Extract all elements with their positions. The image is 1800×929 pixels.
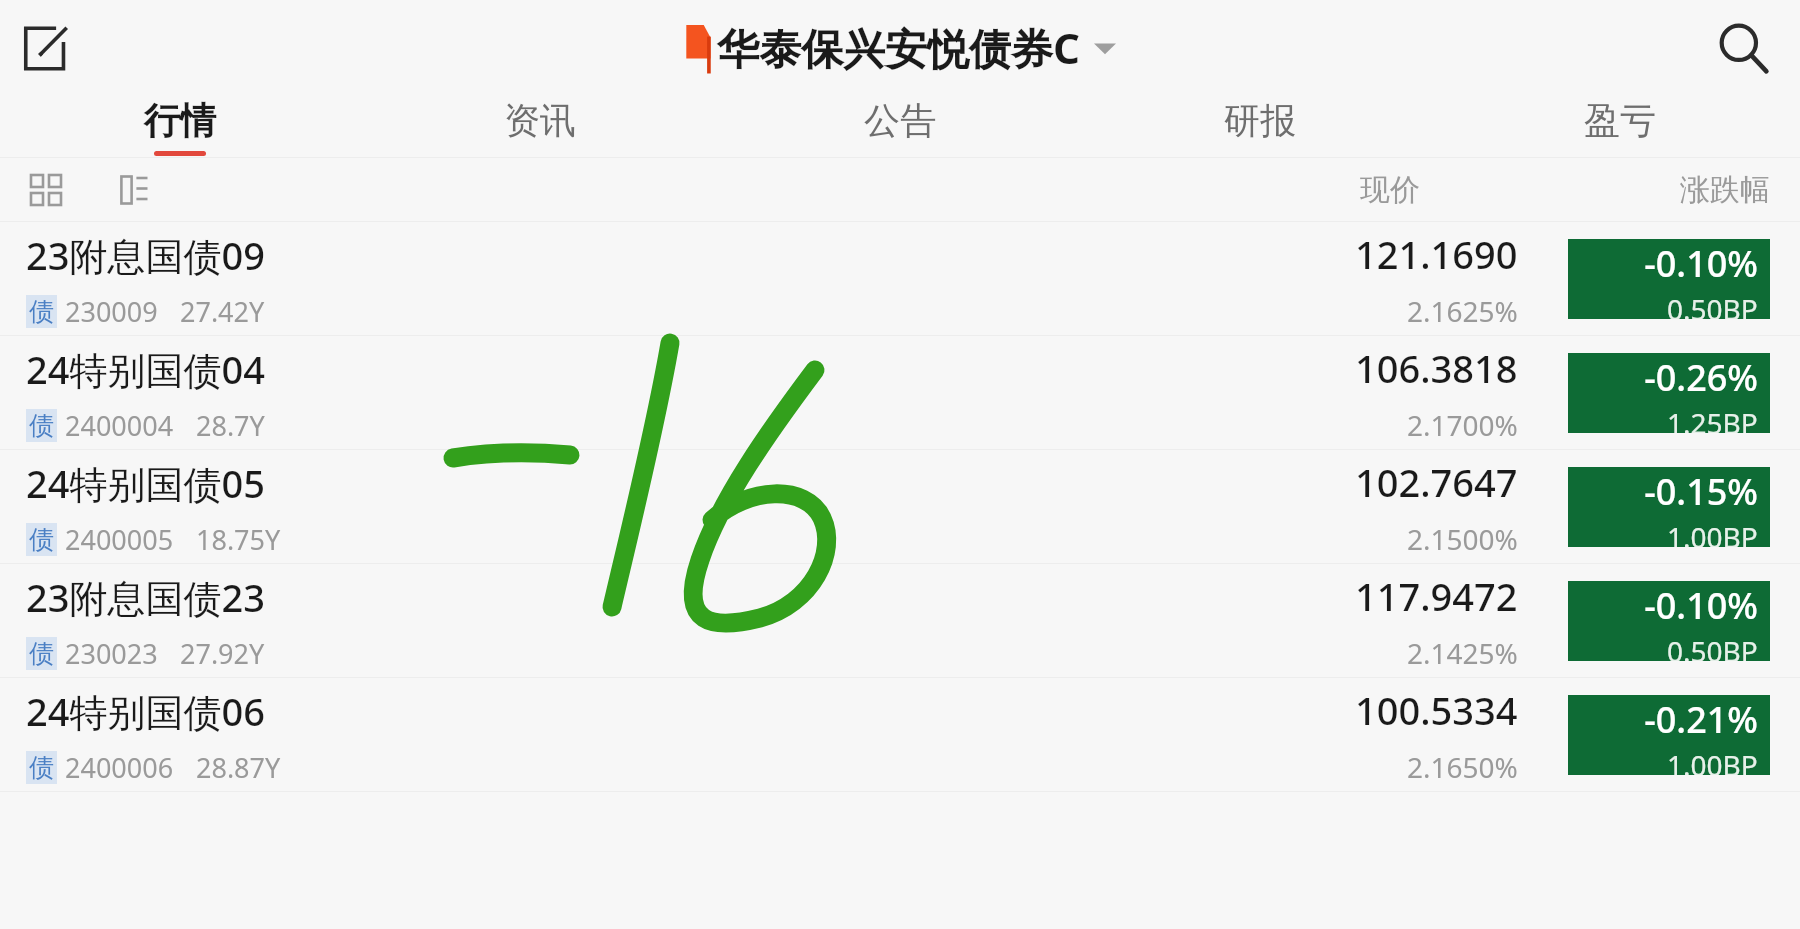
staticText: 24特别国债04	[26, 343, 265, 395]
staticText: 研报	[1224, 98, 1296, 143]
staticText: 0.50BP	[1667, 632, 1758, 661]
staticText: 230023	[65, 635, 158, 672]
button[interactable]: Search	[1708, 13, 1778, 83]
button[interactable]: 24特别国债05	[0, 450, 1800, 564]
staticText: 23附息国债23	[26, 571, 265, 623]
staticText: 2.1500%	[1407, 520, 1518, 558]
button[interactable]: Edit watchlist	[14, 16, 78, 80]
staticText: 华泰保兴安悦债券C	[717, 19, 1080, 76]
staticText: -0.15%	[1644, 467, 1758, 516]
staticText: -0.10%	[1644, 239, 1758, 288]
button[interactable]: 华泰保兴安悦债券C	[685, 19, 1116, 76]
button[interactable]: 24特别国债06	[0, 678, 1800, 792]
staticText: 2.1425%	[1407, 634, 1518, 672]
staticText: 102.7647	[1355, 456, 1518, 508]
staticText: 2400006	[65, 749, 174, 786]
staticText: 106.3818	[1355, 342, 1518, 394]
staticText: 117.9472	[1355, 570, 1518, 622]
staticText: -0.26%	[1644, 353, 1758, 402]
staticText: 24特别国债05	[26, 457, 265, 509]
staticText: 100.5334	[1355, 684, 1518, 736]
staticText: 2.1625%	[1407, 292, 1518, 330]
button[interactable]: 盈亏	[1440, 95, 1800, 158]
button[interactable]: Grid view	[22, 166, 70, 214]
button[interactable]: 24特别国债04	[0, 336, 1800, 450]
button[interactable]: 行情	[0, 95, 360, 158]
staticText: 债	[29, 752, 54, 783]
staticText: 1.00BP	[1667, 746, 1758, 775]
button[interactable]: 公告	[720, 95, 1080, 158]
staticText: 0.50BP	[1667, 290, 1758, 319]
staticText: 27.42Y	[180, 293, 265, 330]
staticText: 盈亏	[1584, 98, 1656, 143]
staticText: 28.7Y	[196, 407, 265, 444]
button[interactable]: 23附息国债09	[0, 222, 1800, 336]
staticText: 债	[29, 638, 54, 669]
staticText: 2.1700%	[1407, 406, 1518, 444]
staticText: 涨跌幅	[1680, 171, 1770, 209]
staticText: -0.21%	[1644, 695, 1758, 744]
staticText: 2400005	[65, 521, 174, 558]
staticText: 债	[29, 296, 54, 327]
staticText: 2400004	[65, 407, 174, 444]
staticText: 现价	[1360, 171, 1420, 209]
staticText: 121.1690	[1355, 228, 1518, 280]
button[interactable]: 研报	[1080, 95, 1440, 158]
staticText: 1.00BP	[1667, 518, 1758, 547]
staticText: 18.75Y	[196, 521, 281, 558]
staticText: 230009	[65, 293, 158, 330]
staticText: -0.10%	[1644, 581, 1758, 630]
staticText: 27.92Y	[180, 635, 265, 672]
staticText: 债	[29, 410, 54, 441]
staticText: 28.87Y	[196, 749, 281, 786]
button[interactable]: Sort	[110, 166, 158, 214]
button[interactable]: 23附息国债23	[0, 564, 1800, 678]
staticText: 23附息国债09	[26, 229, 265, 281]
staticText: 24特别国债06	[26, 685, 265, 737]
staticText: 公告	[864, 98, 936, 143]
staticText: 行情	[144, 98, 216, 143]
staticText: 1.25BP	[1667, 404, 1758, 433]
staticText: 2.1650%	[1407, 748, 1518, 786]
staticText: 资讯	[504, 98, 576, 143]
button[interactable]: 资讯	[360, 95, 720, 158]
staticText: 债	[29, 524, 54, 555]
